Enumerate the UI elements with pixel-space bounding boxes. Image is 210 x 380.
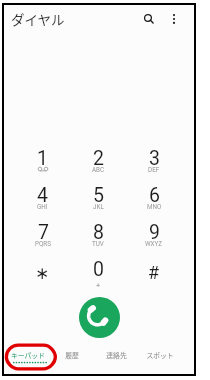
button[interactable]: 連絡先	[94, 350, 138, 374]
staticText: 2	[93, 147, 104, 170]
staticText: ABC	[92, 166, 105, 173]
staticText: 0	[93, 258, 104, 281]
staticText: 1	[37, 147, 48, 170]
button[interactable]: More options	[164, 9, 184, 29]
button[interactable]: 2	[70, 147, 126, 184]
button[interactable]: 8	[70, 221, 126, 258]
staticText: GHI	[37, 203, 48, 210]
button[interactable]: 4	[15, 184, 70, 221]
staticText: 4	[37, 184, 48, 207]
button[interactable]: 9	[126, 221, 182, 258]
staticText: キーパッド	[11, 350, 45, 360]
staticText: 5	[93, 184, 104, 207]
staticText: 6	[149, 184, 160, 207]
button[interactable]: キーパッド	[6, 350, 50, 374]
button[interactable]: 1	[15, 147, 70, 184]
button[interactable]: スポット	[138, 350, 182, 374]
staticText: ∗	[35, 263, 50, 283]
staticText: DEF	[148, 166, 160, 173]
staticText: 8	[93, 221, 104, 244]
staticText: WXYZ	[145, 240, 163, 247]
staticText: 履歴	[65, 350, 79, 360]
button[interactable]: 5	[70, 184, 126, 221]
staticText: TUV	[92, 240, 104, 247]
button[interactable]: #	[126, 258, 182, 295]
button[interactable]: ダイヤル	[11, 9, 65, 29]
staticText: スポット	[146, 350, 174, 360]
button[interactable]: Call	[79, 297, 120, 338]
button[interactable]: 履歴	[50, 350, 94, 374]
button[interactable]: 0	[70, 258, 126, 295]
staticText: 連絡先	[106, 350, 127, 360]
button[interactable]: ∗	[15, 258, 70, 295]
staticText: +	[96, 281, 101, 290]
staticText: 7	[38, 221, 49, 244]
button[interactable]: 6	[126, 184, 182, 221]
staticText: JKL	[93, 203, 104, 210]
button[interactable]: 3	[126, 147, 182, 184]
staticText: 9	[149, 221, 160, 244]
staticText: PQRS	[35, 240, 51, 247]
staticText: 3	[149, 147, 160, 170]
staticText: MNO	[147, 203, 162, 210]
button[interactable]: Search	[139, 9, 159, 29]
button[interactable]: 7	[15, 221, 70, 258]
staticText: #	[148, 262, 160, 283]
